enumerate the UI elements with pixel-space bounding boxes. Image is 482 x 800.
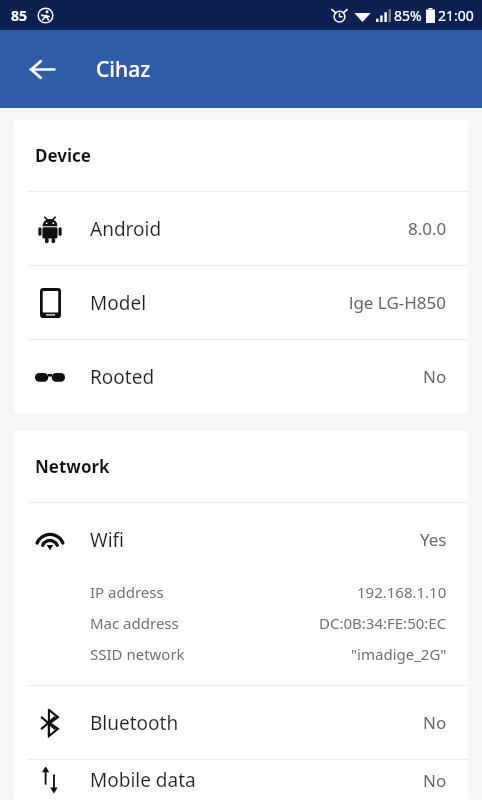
- staticText: Wifi: [90, 527, 125, 553]
- staticText: No: [423, 711, 447, 734]
- staticText: Model: [90, 290, 147, 316]
- staticText: 8.0.0: [408, 217, 447, 240]
- staticText: 21:00: [438, 6, 474, 25]
- staticText: SSID network: [90, 644, 185, 664]
- button[interactable]: Bluetooth: [14, 686, 468, 759]
- staticText: Cihaz: [96, 55, 151, 84]
- staticText: IP address: [90, 582, 164, 602]
- button[interactable]: Back: [18, 45, 66, 93]
- staticText: Mac address: [90, 613, 179, 633]
- button[interactable]: Wifi: [14, 503, 468, 685]
- staticText: Network: [35, 455, 110, 478]
- button[interactable]: Model: [14, 266, 468, 339]
- staticText: "imadige_2G": [351, 644, 447, 664]
- staticText: Rooted: [90, 364, 155, 390]
- staticText: 85%: [394, 6, 422, 25]
- staticText: Device: [35, 144, 91, 167]
- staticText: Bluetooth: [90, 710, 179, 736]
- staticText: DC:0B:34:FE:50:EC: [319, 613, 447, 633]
- staticText: Yes: [420, 528, 447, 551]
- staticText: 192.168.1.10: [357, 582, 447, 602]
- button[interactable]: Android: [14, 192, 468, 265]
- button[interactable]: Rooted: [14, 340, 468, 413]
- staticText: Android: [90, 216, 162, 242]
- staticText: No: [423, 365, 447, 388]
- staticText: lge LG-H850: [349, 291, 447, 314]
- staticText: No: [423, 769, 447, 792]
- staticText: 85: [11, 6, 28, 25]
- staticText: Mobile data: [90, 767, 196, 793]
- button[interactable]: Mobile data: [14, 760, 468, 800]
